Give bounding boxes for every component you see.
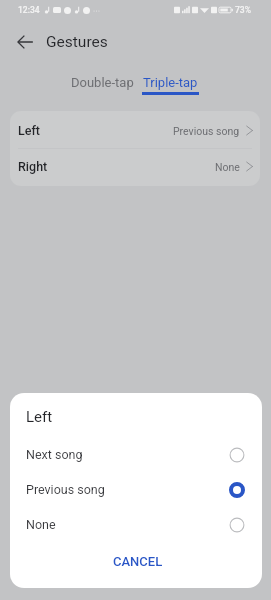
staticText: None — [26, 517, 56, 532]
staticText: CANCEL — [113, 554, 163, 569]
staticText: Left — [18, 123, 41, 138]
button[interactable]: Next song — [10, 437, 262, 472]
button[interactable]: CANCEL — [99, 547, 177, 576]
button[interactable]: None — [10, 507, 262, 542]
staticText: Previous song — [173, 125, 240, 137]
staticText: Left — [26, 408, 53, 426]
button[interactable]: Left — [10, 113, 260, 148]
staticText: 73% — [235, 5, 251, 15]
staticText: Next song — [26, 447, 83, 462]
button[interactable]: Back — [7, 24, 43, 60]
button[interactable]: Double-tap — [63, 68, 142, 95]
staticText: Right — [18, 159, 48, 174]
button[interactable]: Previous song — [10, 472, 262, 507]
staticText: 12:34 — [18, 5, 40, 15]
staticText: Double-tap — [71, 75, 134, 90]
button[interactable]: Triple-tap — [142, 68, 199, 95]
staticText: Triple-tap — [143, 75, 198, 90]
staticText: Previous song — [26, 482, 105, 497]
staticText: None — [215, 161, 240, 173]
button[interactable]: Right — [10, 149, 260, 184]
staticText: Gestures — [46, 33, 108, 51]
